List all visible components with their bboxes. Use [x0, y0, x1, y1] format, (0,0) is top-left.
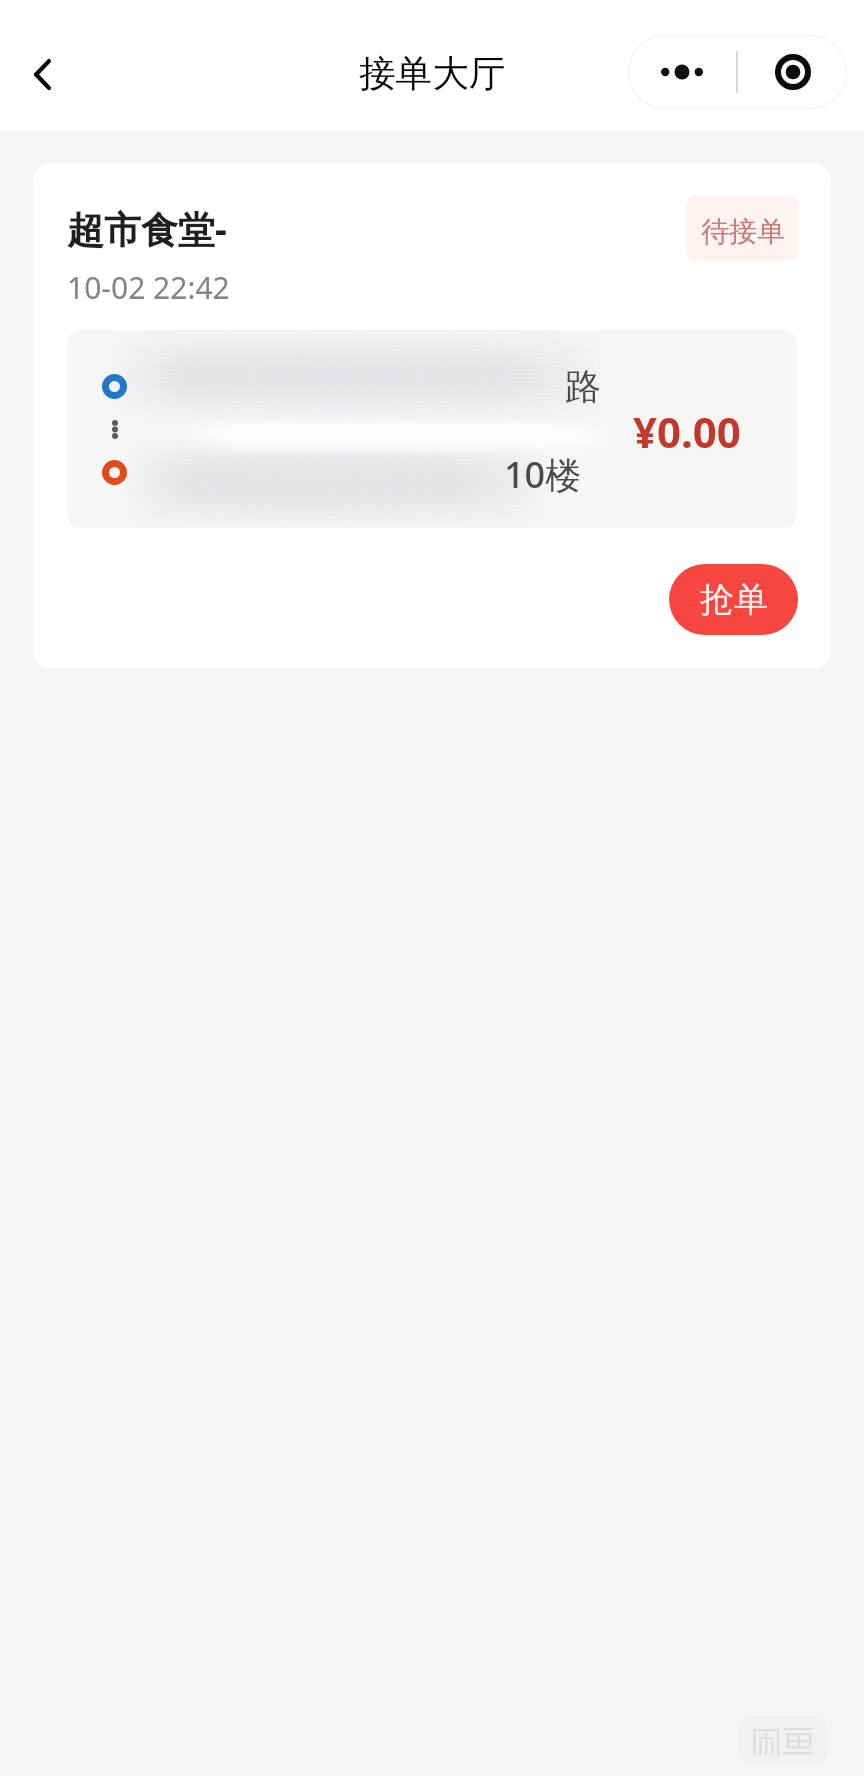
- button[interactable]: 抢单: [669, 564, 798, 635]
- staticText: 待接单: [701, 214, 785, 249]
- staticText: 接单大厅: [359, 51, 506, 97]
- button[interactable]: Back: [20, 30, 64, 118]
- staticText: 路: [565, 364, 601, 409]
- staticText: 10楼: [504, 450, 582, 499]
- staticText: ¥0.00: [633, 403, 741, 460]
- button[interactable]: More: [628, 35, 736, 109]
- staticText: 10-02 22:42: [67, 267, 230, 308]
- button[interactable]: 超市食堂-: [33, 163, 831, 668]
- button[interactable]: 待接单: [686, 196, 799, 261]
- button[interactable]: Close mini program: [738, 35, 847, 109]
- staticText: 超市食堂-: [67, 203, 227, 254]
- staticText: 抢单: [700, 578, 768, 621]
